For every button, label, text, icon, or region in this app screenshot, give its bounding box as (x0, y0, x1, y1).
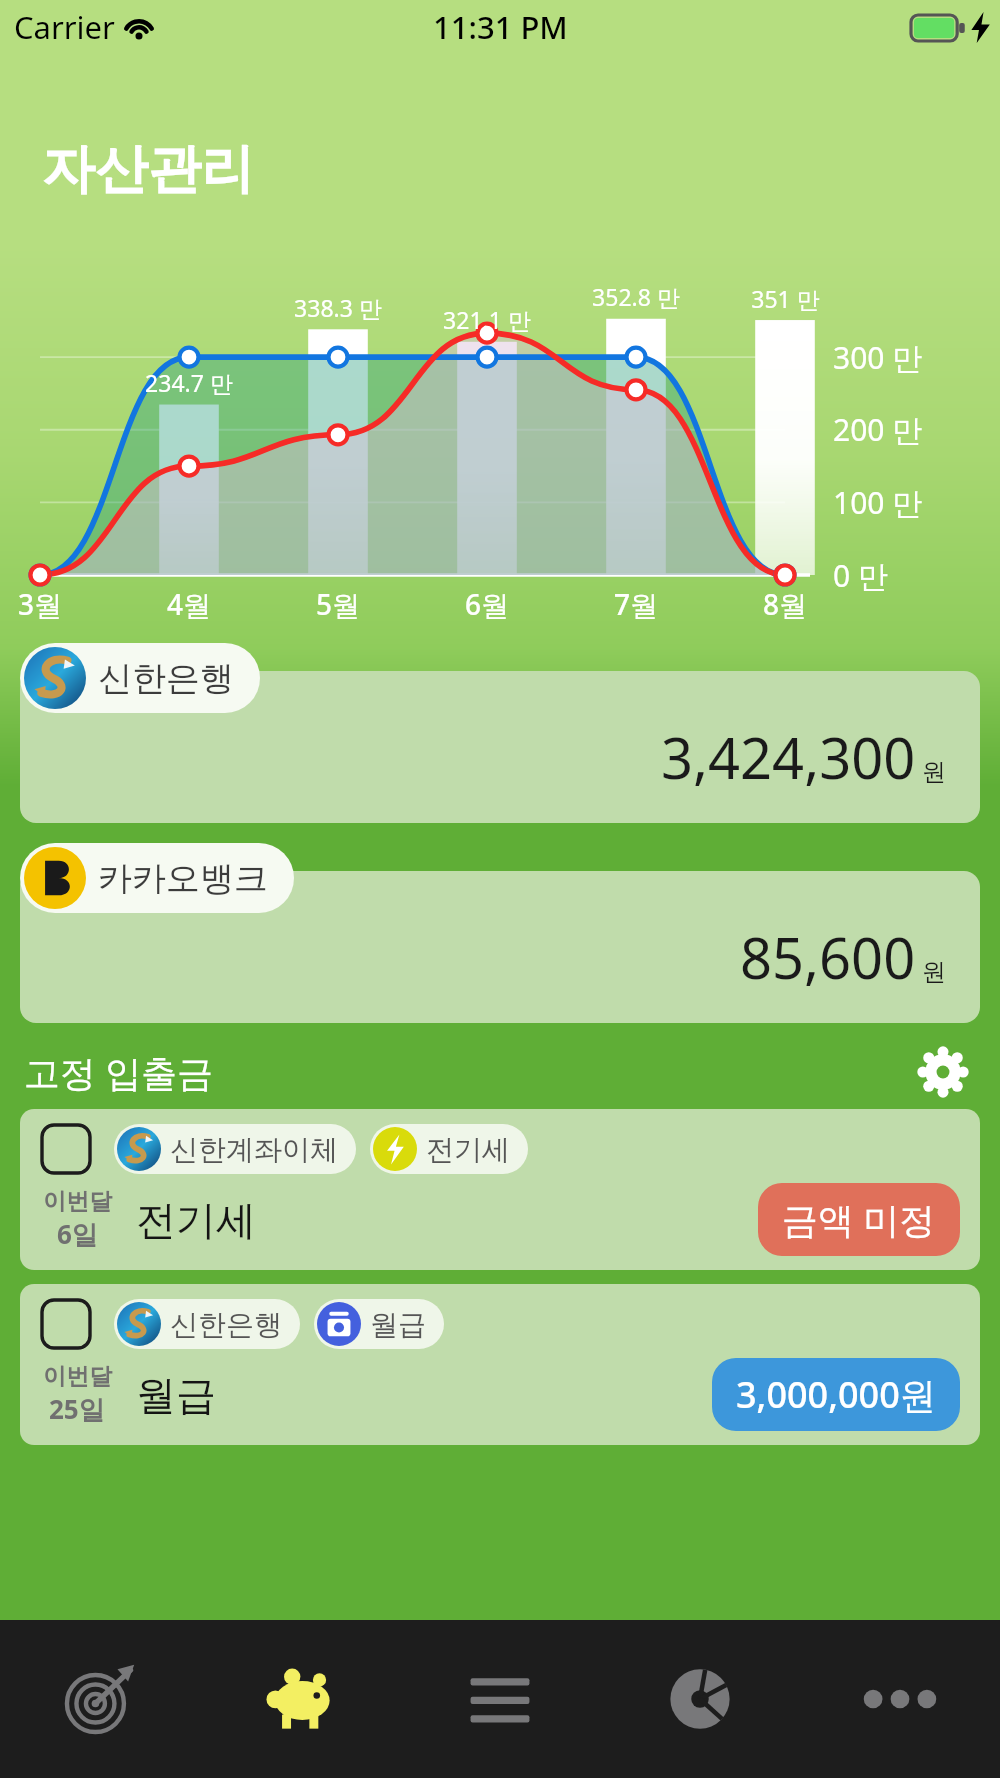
staticText: 6일 (57, 1216, 98, 1252)
staticText: 금액 미정 (782, 1195, 936, 1244)
button[interactable]: 85,600 (20, 871, 980, 1023)
staticText: 0 만 (833, 555, 888, 596)
staticText: 3,000,000원 (736, 1370, 936, 1419)
button[interactable]: 금액 미정 (758, 1183, 960, 1256)
staticText: 전기세 (426, 1132, 510, 1167)
staticText: 월급 (136, 1370, 216, 1420)
staticText: 전기세 (136, 1195, 256, 1245)
staticText: 25일 (49, 1391, 105, 1427)
button[interactable]: Statistics (600, 1620, 800, 1778)
staticText: 7월 (614, 585, 659, 623)
button[interactable]: 신한은행 (117, 1302, 282, 1346)
button[interactable]: More (800, 1620, 1000, 1778)
staticText: 321.1 만 (443, 304, 531, 335)
button[interactable]: Select (20, 1284, 980, 1445)
staticText: 신한은행 (98, 657, 234, 700)
staticText: 신한계좌이체 (170, 1132, 338, 1167)
staticText: 월급 (370, 1307, 426, 1342)
staticText: 352.8 만 (592, 281, 680, 312)
staticText: 이번달 (43, 1362, 112, 1391)
button[interactable]: 3,424,300 (20, 671, 980, 823)
staticText: 11:31 PM (433, 6, 568, 48)
staticText: 이번달 (43, 1187, 112, 1216)
staticText: 카카오뱅크 (98, 857, 268, 900)
button[interactable]: Select (20, 1109, 980, 1270)
button[interactable]: Select (40, 1298, 92, 1350)
staticText: 300 만 (833, 337, 923, 378)
staticText: 234.7 만 (145, 367, 233, 398)
staticText: 자산관리 (42, 136, 254, 203)
staticText: 3월 (18, 585, 63, 623)
button[interactable]: 신한은행 (24, 647, 234, 709)
button[interactable]: 카카오뱅크 (24, 847, 268, 909)
staticText: 신한은행 (170, 1307, 282, 1342)
button[interactable]: Settings (912, 1041, 974, 1103)
button[interactable]: Goals (0, 1620, 200, 1778)
button[interactable]: 전기세 (373, 1127, 510, 1171)
staticText: 200 만 (833, 409, 923, 450)
staticText: 6월 (465, 585, 510, 623)
staticText: 4월 (167, 585, 212, 623)
button[interactable]: 3,000,000원 (712, 1358, 960, 1431)
staticText: 351 만 (751, 283, 820, 314)
staticText: 원 (922, 757, 946, 787)
button[interactable]: Savings (200, 1620, 400, 1778)
button[interactable]: 신한계좌이체 (117, 1127, 338, 1171)
staticText: 5월 (316, 585, 361, 623)
button[interactable]: List (400, 1620, 600, 1778)
staticText: 원 (922, 957, 946, 987)
staticText: 338.3 만 (294, 292, 382, 323)
staticText: 고정 입출금 (24, 1048, 214, 1097)
button[interactable]: Select (40, 1123, 92, 1175)
button[interactable]: 월급 (317, 1302, 426, 1346)
staticText: 3,424,300 (661, 719, 916, 795)
staticText: 100 만 (833, 482, 923, 523)
staticText: Carrier (14, 6, 115, 48)
staticText: 8월 (763, 585, 808, 623)
staticText: 85,600 (740, 919, 916, 995)
